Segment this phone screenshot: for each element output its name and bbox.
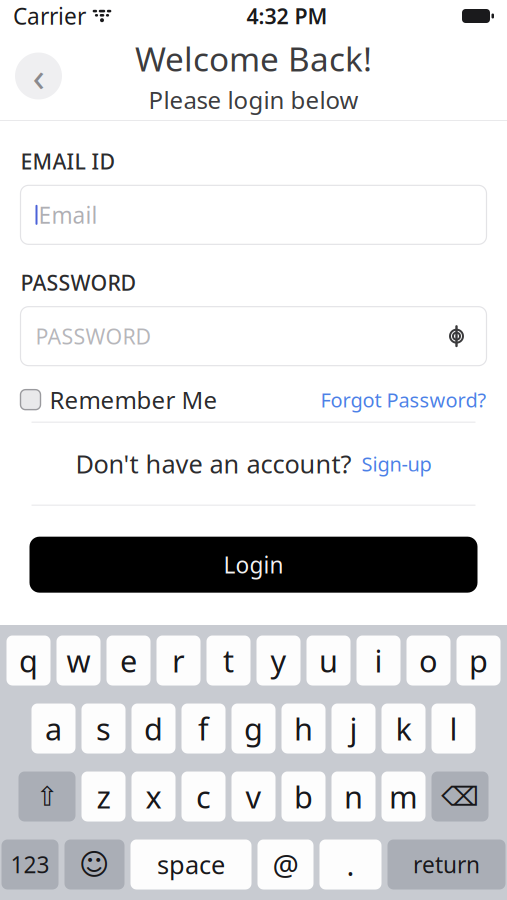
button[interactable]: Email (20, 185, 486, 244)
staticText: e (120, 640, 137, 681)
staticText: Carrier (13, 1, 86, 31)
button[interactable]: e (106, 635, 150, 685)
staticText: n (344, 776, 363, 817)
staticText: o (419, 640, 438, 681)
button[interactable]: return (387, 839, 505, 889)
staticText: Sign-up (361, 450, 431, 477)
staticText: a (45, 708, 62, 749)
staticText: @ (272, 845, 298, 884)
staticText: PASSWORD (20, 268, 136, 297)
button[interactable]: t (206, 635, 250, 685)
staticText: b (294, 776, 313, 817)
button[interactable]: j (331, 703, 375, 753)
button[interactable]: Remember Me (20, 384, 217, 416)
button[interactable]: Back (15, 52, 62, 99)
staticText: return (413, 849, 480, 879)
staticText: 123 (10, 849, 49, 879)
button[interactable]: o (406, 635, 450, 685)
button[interactable]: s (81, 703, 125, 753)
button[interactable]: k (381, 703, 425, 753)
button[interactable]: @ (257, 839, 313, 889)
button[interactable]: b (281, 771, 325, 821)
staticText: x (145, 776, 161, 817)
button[interactable]: Login (29, 537, 477, 593)
staticText: y (270, 640, 286, 681)
staticText: c (196, 776, 211, 817)
staticText: r (172, 640, 185, 681)
button[interactable]: ⇧ (18, 771, 75, 821)
staticText: i (374, 640, 382, 681)
staticText: u (319, 640, 338, 681)
button[interactable]: space (130, 839, 251, 889)
staticText: EMAIL ID (20, 147, 115, 175)
staticText: z (96, 776, 110, 817)
staticText: ⌫ (441, 781, 479, 812)
staticText: q (19, 640, 38, 681)
staticText: p (469, 640, 488, 681)
staticText: v (245, 776, 261, 817)
button[interactable]: z (81, 771, 125, 821)
button[interactable]: c (181, 771, 225, 821)
staticText: h (294, 708, 313, 749)
staticText: 4:32 PM (246, 2, 327, 30)
button[interactable]: q (6, 635, 50, 685)
button[interactable]: h (281, 703, 325, 753)
staticText: ‹ (32, 49, 44, 102)
staticText: space (157, 848, 225, 881)
button[interactable]: a (31, 703, 75, 753)
button[interactable]: u (306, 635, 350, 685)
button[interactable]: Show password (441, 321, 471, 351)
staticText: d (144, 708, 163, 749)
staticText: Welcome Back! (135, 36, 372, 81)
button[interactable]: Forgot Password? (320, 386, 486, 413)
button[interactable]: m (381, 771, 425, 821)
button[interactable]: d (131, 703, 175, 753)
button[interactable]: v (231, 771, 275, 821)
button[interactable]: n (331, 771, 375, 821)
staticText: f (198, 708, 209, 749)
button[interactable]: y (256, 635, 300, 685)
staticText: g (244, 708, 263, 749)
staticText: Please login below (148, 84, 358, 116)
button[interactable]: r (156, 635, 200, 685)
staticText: Remember Me (49, 384, 217, 416)
staticText: ☺ (79, 848, 110, 881)
staticText: . (346, 845, 354, 884)
staticText: Login (223, 550, 283, 580)
staticText: j (349, 708, 357, 749)
staticText: ⇧ (36, 781, 58, 812)
button[interactable]: l (431, 703, 475, 753)
staticText: m (389, 776, 418, 817)
staticText: l (449, 708, 457, 749)
staticText: Forgot Password? (320, 386, 486, 413)
button[interactable]: g (231, 703, 275, 753)
button[interactable]: . (319, 839, 381, 889)
staticText: t (223, 640, 234, 681)
staticText: k (395, 708, 411, 749)
staticText: PASSWORD (35, 322, 151, 350)
button[interactable]: f (181, 703, 225, 753)
button[interactable]: p (456, 635, 500, 685)
button[interactable]: 123 (1, 839, 58, 889)
button[interactable]: ⌫ (431, 771, 488, 821)
staticText: Don't have an account? (75, 447, 351, 480)
button[interactable]: i (356, 635, 400, 685)
button[interactable]: x (131, 771, 175, 821)
staticText: w (66, 640, 90, 681)
button[interactable]: ☺ (64, 839, 124, 889)
staticText: s (96, 708, 111, 749)
button[interactable]: Don't have an account? (31, 423, 475, 505)
staticText: Email (38, 200, 97, 230)
button[interactable]: w (56, 635, 100, 685)
